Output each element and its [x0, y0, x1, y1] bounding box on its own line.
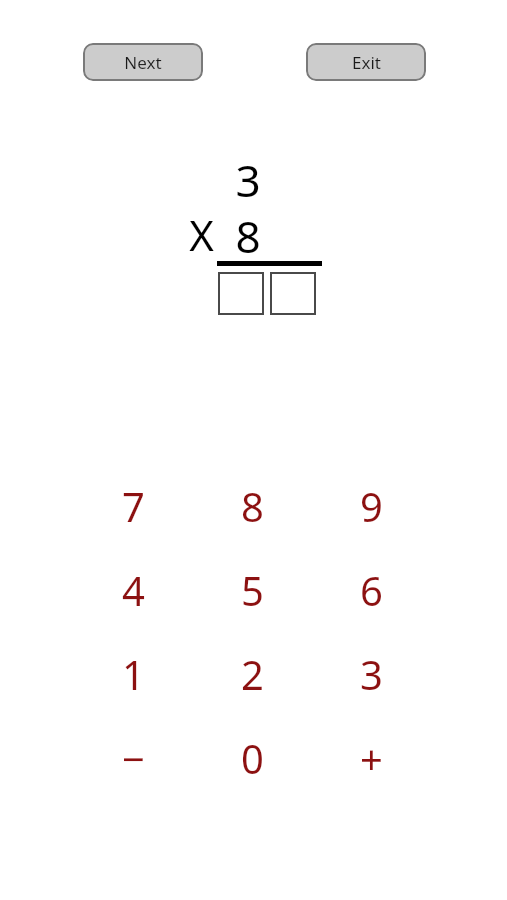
staticText: X	[189, 206, 214, 262]
button[interactable]: Exit	[306, 43, 426, 81]
button[interactable]: 8	[193, 464, 312, 548]
staticText: 3	[235, 150, 261, 206]
button[interactable]: 5	[193, 548, 312, 632]
staticText: 9	[360, 479, 383, 533]
staticText: 8	[235, 206, 261, 262]
staticText: 7	[122, 479, 145, 533]
button[interactable]: 6	[312, 548, 431, 632]
staticText: +	[360, 731, 383, 785]
button[interactable]	[218, 272, 264, 315]
staticText: 8	[241, 479, 264, 533]
staticText: 5	[241, 563, 264, 617]
staticText: 1	[122, 647, 145, 701]
staticText: Next	[124, 51, 162, 74]
button[interactable]: +	[312, 716, 431, 800]
button[interactable]: 7	[74, 464, 193, 548]
button[interactable]: 4	[74, 548, 193, 632]
button[interactable]: 9	[312, 464, 431, 548]
button[interactable]	[270, 272, 316, 315]
button[interactable]: 3	[312, 632, 431, 716]
button[interactable]: −	[74, 716, 193, 800]
staticText: 4	[122, 563, 145, 617]
staticText: Exit	[352, 51, 381, 74]
button[interactable]: 0	[193, 716, 312, 800]
staticText: 6	[360, 563, 383, 617]
staticText: −	[122, 731, 145, 785]
button[interactable]: 1	[74, 632, 193, 716]
staticText: 0	[241, 731, 264, 785]
button[interactable]: Next	[83, 43, 203, 81]
button[interactable]: 2	[193, 632, 312, 716]
staticText: 3	[360, 647, 383, 701]
staticText: 2	[241, 647, 264, 701]
